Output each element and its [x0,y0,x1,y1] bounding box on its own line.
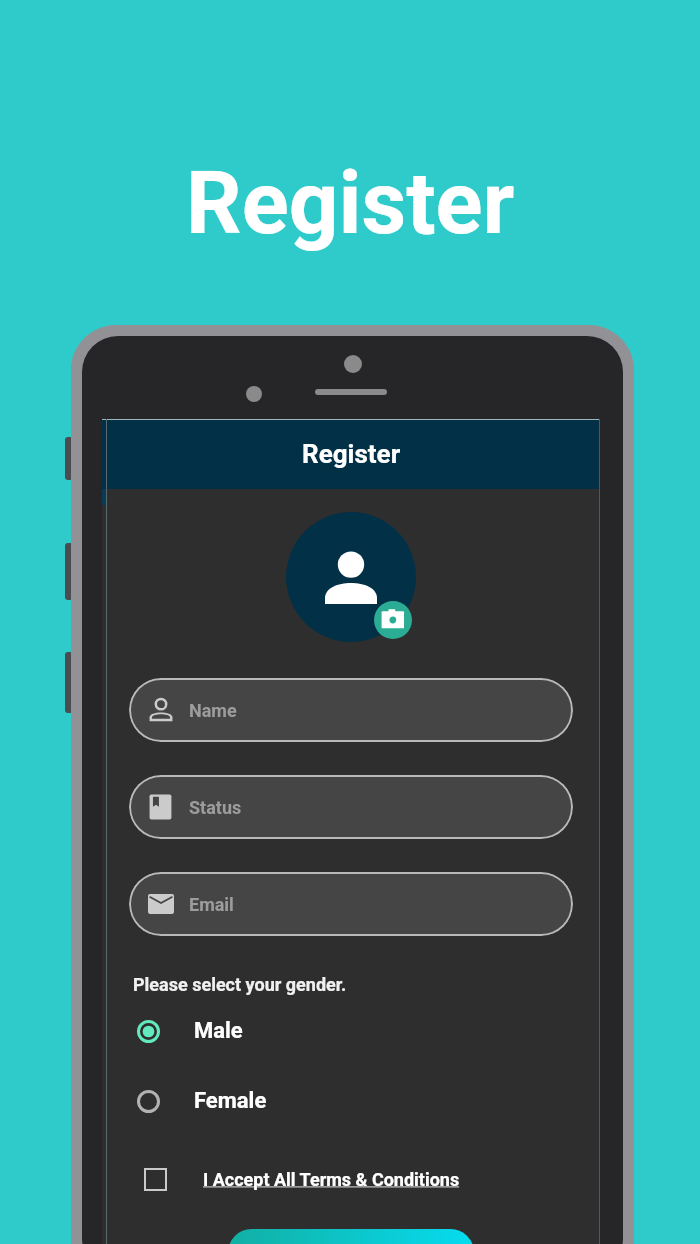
button[interactable]: Status [129,775,573,839]
staticText: Register [302,439,401,469]
button[interactable]: Female [102,1088,600,1114]
button[interactable]: Name [129,678,573,742]
staticText: Email [189,894,234,915]
staticText: REGISTER [307,1242,395,1244]
button[interactable]: Email [129,872,573,936]
button[interactable]: I Accept All Terms & Conditions [102,1168,600,1191]
button[interactable]: Male [102,1018,600,1044]
button[interactable]: Change profile photo [374,601,412,639]
staticText: Name [189,700,237,721]
button[interactable]: Register [102,419,600,489]
button[interactable]: REGISTER [228,1229,474,1244]
button[interactable]: Profile picture [286,512,416,642]
staticText: Register [186,152,515,254]
staticText: Please select your gender. [133,974,347,995]
staticText: Female [194,1088,267,1114]
staticText: Male [194,1018,243,1044]
staticText: I Accept All Terms & Conditions [203,1169,460,1190]
staticText: Status [189,797,242,818]
